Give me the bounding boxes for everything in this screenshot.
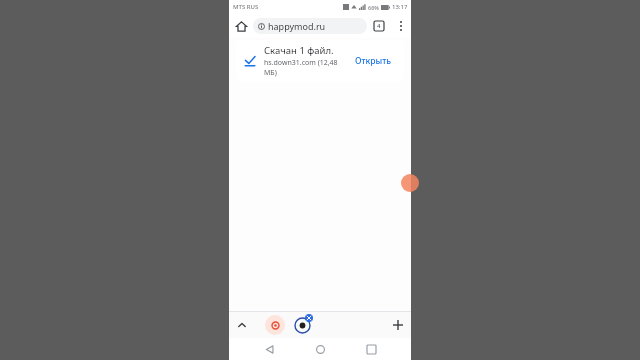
- staticText: hs.down31.com (12,48 МБ): [264, 58, 351, 78]
- button[interactable]: happymod.ru: [253, 18, 367, 34]
- button[interactable]: Tabs: [367, 14, 391, 38]
- button[interactable]: More options: [391, 16, 411, 36]
- button[interactable]: Back: [258, 338, 280, 360]
- button[interactable]: Screen record target: [291, 314, 313, 336]
- button[interactable]: Home: [229, 14, 253, 38]
- staticText: Открыть: [355, 55, 392, 67]
- button[interactable]: Recent apps: [360, 338, 382, 360]
- button[interactable]: New tab: [385, 312, 411, 338]
- staticText: 13:17: [392, 3, 408, 11]
- button[interactable]: Floating action: [401, 174, 419, 192]
- button[interactable]: Скачан 1 файл.: [236, 40, 404, 82]
- button[interactable]: Открыть: [351, 51, 396, 71]
- staticText: MTS RUS: [233, 3, 259, 11]
- button[interactable]: Home: [309, 338, 331, 360]
- button[interactable]: Recording: [265, 315, 285, 335]
- staticText: 66%: [368, 4, 379, 11]
- button[interactable]: Expand: [229, 312, 255, 338]
- staticText: 4: [377, 22, 381, 30]
- staticText: Скачан 1 файл.: [264, 44, 334, 57]
- staticText: happymod.ru: [268, 20, 326, 32]
